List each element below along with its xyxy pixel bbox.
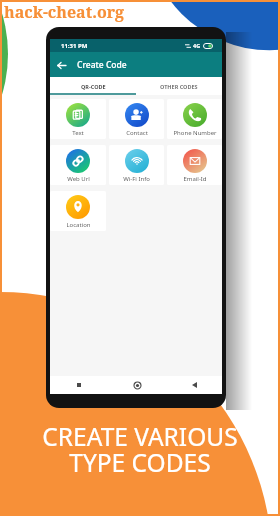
- staticText: Wi-Fi Info: [123, 175, 150, 183]
- staticText: Email-Id: [183, 175, 207, 183]
- staticText: 4G: [193, 42, 201, 49]
- button[interactable]: Location: [50, 191, 106, 231]
- staticText: Location: [66, 221, 91, 229]
- staticText: Contact: [126, 129, 148, 137]
- button[interactable]: QR-CODE: [50, 77, 136, 95]
- staticText: QR-CODE: [81, 83, 106, 90]
- button[interactable]: OTHER CODES: [136, 77, 222, 95]
- staticText: Web Url: [67, 175, 90, 183]
- button[interactable]: Web Url: [50, 145, 106, 185]
- staticText: Phone Number: [173, 129, 217, 137]
- button[interactable]: Email-Id: [167, 145, 222, 185]
- button[interactable]: Wi-Fi Info: [109, 145, 164, 185]
- button[interactable]: Recents: [71, 377, 87, 393]
- button[interactable]: Phone Number: [167, 99, 222, 139]
- staticText: Text: [72, 129, 84, 137]
- button[interactable]: Contact: [109, 99, 164, 139]
- button[interactable]: Home: [129, 377, 145, 393]
- button[interactable]: Back: [186, 377, 202, 393]
- staticText: 11:31 PM: [61, 42, 88, 50]
- button[interactable]: Back: [50, 54, 72, 76]
- staticText: CREATE VARIOUS TYPE CODES: [0, 420, 280, 479]
- button[interactable]: Text: [50, 99, 106, 139]
- staticText: OTHER CODES: [160, 83, 198, 90]
- staticText: Create Code: [77, 59, 127, 71]
- staticText: hack-cheat.org: [4, 1, 125, 23]
